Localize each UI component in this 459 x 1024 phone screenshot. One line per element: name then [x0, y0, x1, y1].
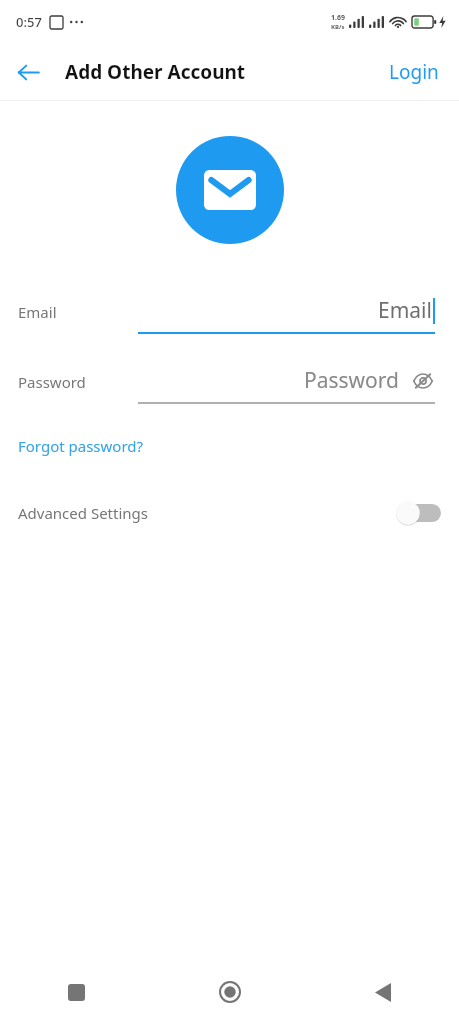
staticText: Login — [389, 59, 439, 85]
staticText: Password — [304, 366, 399, 395]
staticText: Email — [378, 296, 432, 325]
button[interactable]: Password — [0, 360, 459, 404]
button[interactable]: Email — [0, 290, 459, 334]
button[interactable]: Show password — [411, 369, 435, 393]
staticText: KB/s — [331, 23, 345, 31]
button[interactable]: Back — [306, 960, 459, 1024]
button[interactable]: Advanced Settings — [0, 492, 459, 534]
button[interactable]: Login — [379, 51, 449, 93]
staticText: Forgot password? — [18, 436, 144, 456]
staticText: 0:57 — [16, 13, 42, 31]
staticText: Advanced Settings — [18, 503, 148, 523]
staticText: Add Other Account — [65, 59, 246, 85]
staticText: Password — [18, 372, 86, 392]
button[interactable]: Back — [6, 50, 50, 94]
button[interactable]: Recents — [0, 960, 153, 1024]
staticText: 1.69 — [331, 13, 345, 23]
button[interactable]: Home — [153, 960, 306, 1024]
staticText: Email — [18, 302, 57, 322]
button[interactable]: Advanced Settings toggle — [395, 500, 441, 526]
button[interactable]: Forgot password? — [10, 432, 152, 460]
